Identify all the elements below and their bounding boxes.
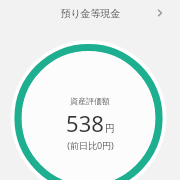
staticText: 預り金等現金	[60, 7, 121, 20]
button[interactable]: Next	[140, 0, 180, 26]
staticText: 538	[66, 108, 104, 138]
staticText: 資産評価額	[70, 96, 110, 106]
button[interactable]: 資産評価額	[0, 96, 180, 151]
button[interactable]: 預り金等現金	[0, 0, 180, 26]
staticText: 円	[105, 122, 115, 135]
staticText: (前日比0円)	[67, 139, 114, 151]
